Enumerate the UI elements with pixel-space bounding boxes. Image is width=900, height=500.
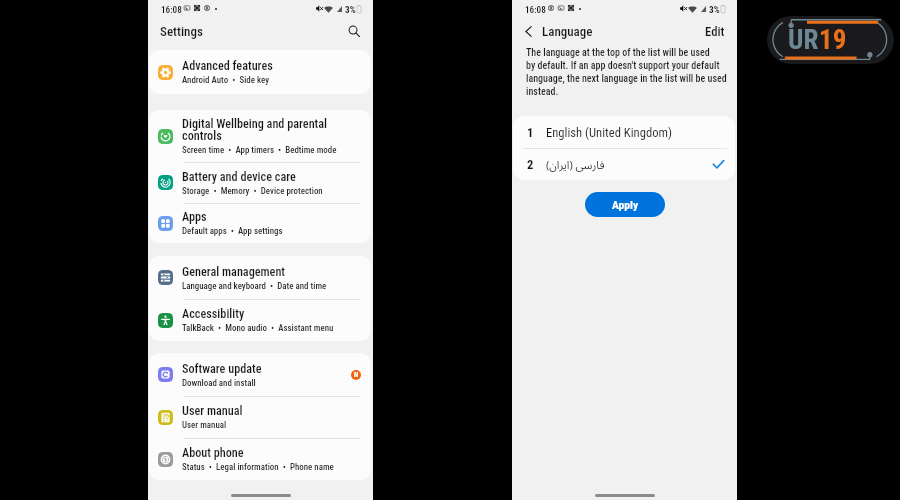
staticText: 19: [819, 24, 847, 56]
staticText: Storage • Memory • Device protection: [182, 186, 323, 196]
button[interactable]: Edit: [704, 20, 726, 43]
button[interactable]: Advanced features: [149, 50, 371, 94]
staticText: General management: [182, 265, 286, 279]
button[interactable]: About phone: [149, 438, 371, 480]
staticText: User manual: [182, 404, 243, 418]
button[interactable]: Apps: [149, 203, 371, 243]
button[interactable]: Apply: [585, 192, 665, 217]
button[interactable]: General management: [149, 256, 371, 299]
staticText: Screen time • App timers • Bedtime mode: [182, 145, 337, 155]
staticText: User manual: [182, 420, 227, 430]
staticText: 3%: [345, 4, 356, 15]
staticText: 3%: [709, 4, 720, 15]
button[interactable]: Digital Wellbeing and parental controls: [149, 110, 371, 162]
staticText: Android Auto • Side key: [182, 75, 270, 85]
staticText: Edit: [705, 24, 725, 39]
staticText: Apps: [182, 210, 207, 224]
staticText: Accessibility: [182, 307, 245, 321]
button[interactable]: Battery and device care: [149, 162, 371, 203]
staticText: 2: [527, 157, 534, 172]
staticText: Advanced features: [182, 59, 273, 73]
staticText: Status • Legal information • Phone name: [182, 462, 334, 472]
staticText: Software update: [182, 362, 262, 376]
staticText: فارسی (ایران): [546, 157, 605, 172]
staticText: 16:08: [525, 4, 546, 15]
staticText: English (United Kingdom): [546, 125, 672, 140]
button[interactable]: Software update: [149, 353, 371, 396]
staticText: Battery and device care: [182, 170, 296, 184]
staticText: N: [354, 371, 359, 379]
staticText: Language: [542, 24, 593, 39]
staticText: Digital Wellbeing and parental controls: [182, 117, 328, 143]
staticText: The language at the top of the list will…: [526, 47, 731, 98]
button[interactable]: User manual: [149, 396, 371, 438]
button[interactable]: Accessibility: [149, 299, 371, 341]
staticText: 1: [527, 125, 534, 140]
staticText: UR: [788, 24, 819, 56]
button[interactable]: 2: [513, 148, 735, 180]
button[interactable]: Search: [345, 22, 363, 40]
staticText: 16:08: [161, 4, 182, 15]
staticText: Language and keyboard • Date and time: [182, 281, 327, 291]
staticText: Settings: [160, 24, 203, 39]
button[interactable]: Back: [520, 23, 536, 39]
staticText: Download and install: [182, 378, 256, 388]
staticText: Apply: [612, 198, 639, 211]
staticText: Default apps • App settings: [182, 226, 283, 236]
staticText: About phone: [182, 446, 244, 460]
button[interactable]: 1: [513, 116, 735, 148]
staticText: TalkBack • Mono audio • Assistant menu: [182, 323, 334, 333]
